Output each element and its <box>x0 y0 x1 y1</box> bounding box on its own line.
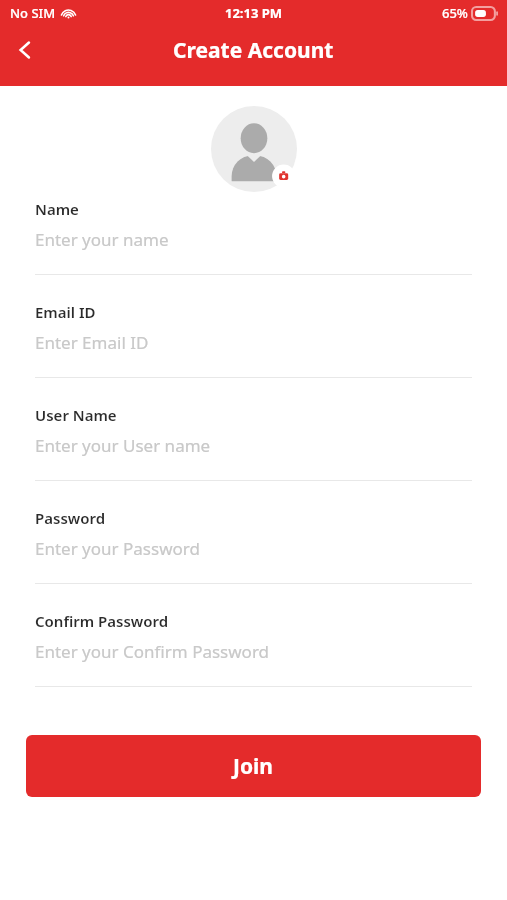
staticText: Enter your Confirm Password <box>35 640 270 663</box>
button[interactable]: Confirm Password <box>0 600 507 703</box>
button[interactable]: Name <box>0 188 507 291</box>
button[interactable]: User Name <box>0 394 507 497</box>
staticText: 12:13 PM <box>225 4 283 22</box>
button[interactable]: Password <box>0 497 507 600</box>
button[interactable]: Email ID <box>0 291 507 394</box>
staticText: Confirm Password <box>35 611 169 631</box>
staticText: Email ID <box>35 302 96 322</box>
staticText: Enter Email ID <box>35 331 149 354</box>
staticText: User Name <box>35 405 117 425</box>
staticText: Enter your Password <box>35 537 200 560</box>
staticText: Password <box>35 508 106 528</box>
staticText: Name <box>35 199 79 219</box>
staticText: Join <box>233 752 274 781</box>
button[interactable]: Join <box>26 735 481 797</box>
staticText: Create Account <box>173 36 334 65</box>
staticText: Enter your name <box>35 228 169 251</box>
staticText: Enter your User name <box>35 434 211 457</box>
staticText: 65% <box>442 4 468 22</box>
button[interactable]: Back <box>2 26 48 74</box>
staticText: No SIM <box>10 4 56 22</box>
button[interactable]: Change profile photo <box>211 106 297 192</box>
